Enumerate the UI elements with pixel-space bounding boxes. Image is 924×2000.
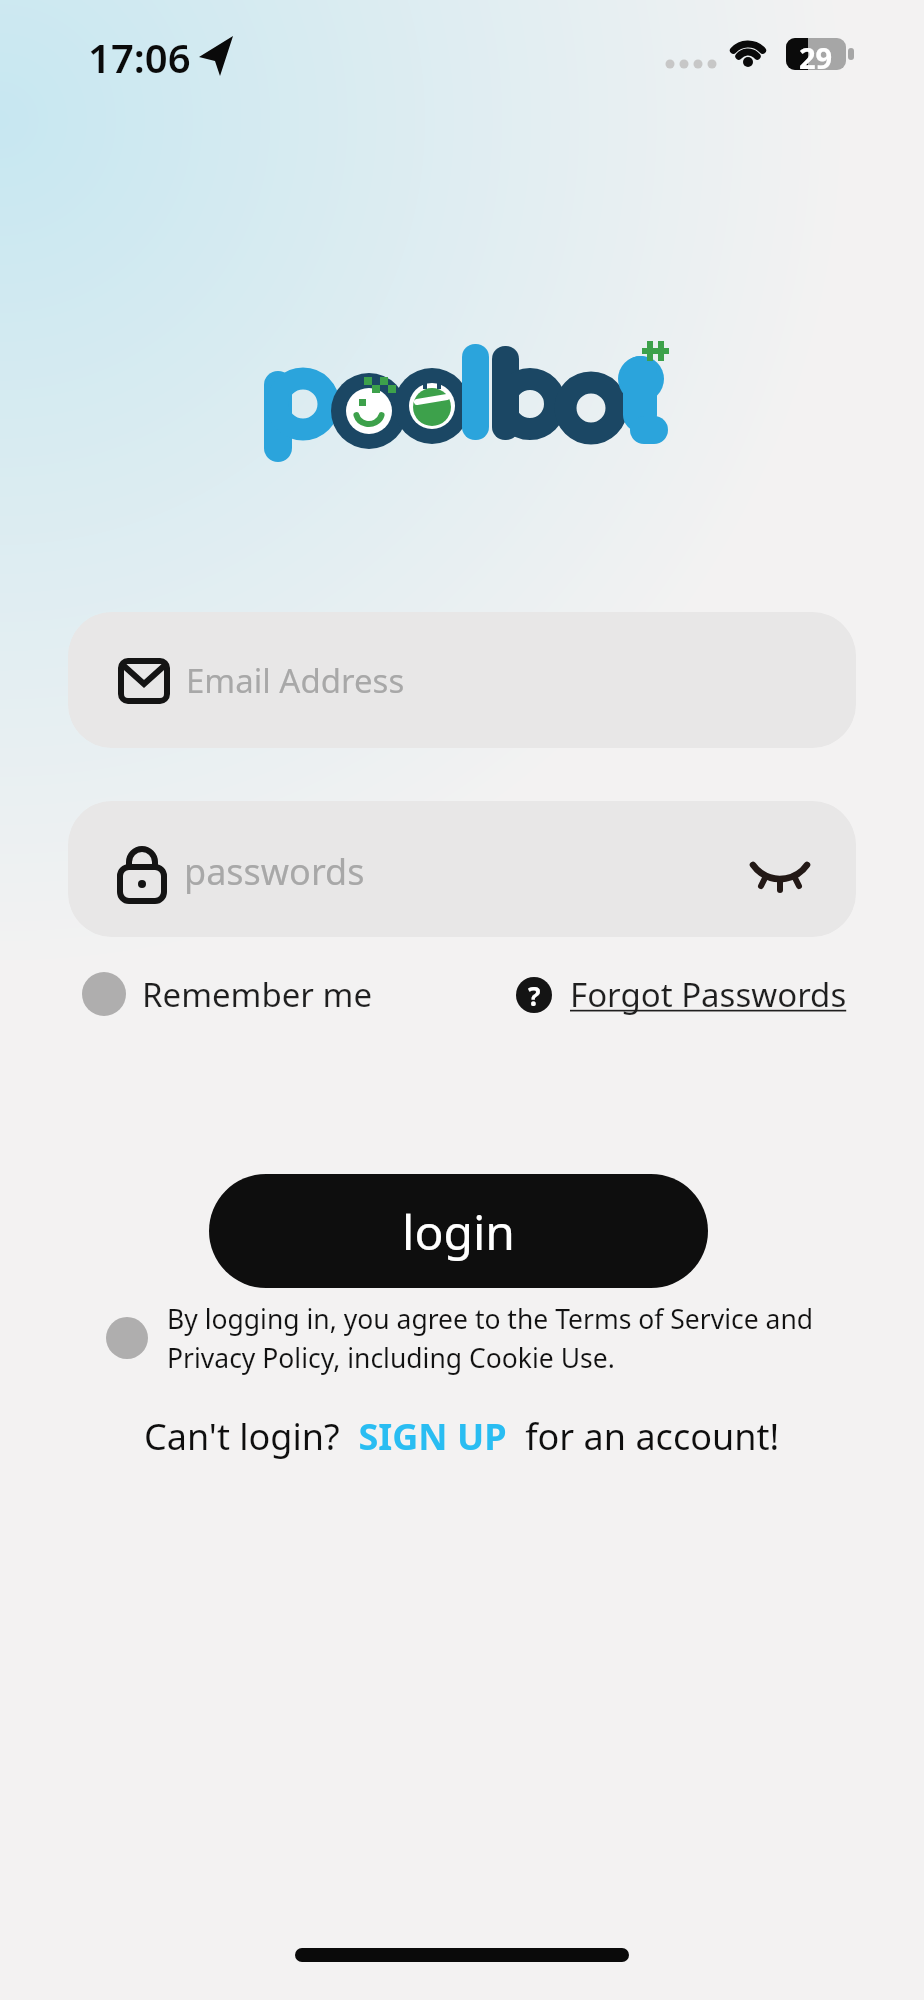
staticText: ? — [528, 978, 541, 1013]
staticText: Privacy Policy, including Cookie Use. — [167, 1340, 615, 1376]
button[interactable]: Can't login? SIGN UP for an account! — [144, 1412, 780, 1461]
button[interactable]: login — [209, 1174, 708, 1288]
button[interactable]: Remember me — [142, 972, 373, 1017]
staticText: 29 — [799, 38, 833, 70]
button[interactable]: Email Address — [68, 612, 856, 748]
staticText: passwords — [184, 847, 365, 896]
staticText: By logging in, you agree to the Terms of… — [167, 1301, 814, 1337]
staticText: Email Address — [186, 658, 405, 703]
staticText: login — [402, 1199, 515, 1264]
button[interactable]: passwords — [68, 801, 856, 937]
button[interactable] — [82, 972, 126, 1016]
staticText: 17:06 — [88, 30, 191, 84]
button[interactable]: Forgot Passwords — [570, 972, 847, 1017]
button[interactable] — [106, 1317, 148, 1359]
